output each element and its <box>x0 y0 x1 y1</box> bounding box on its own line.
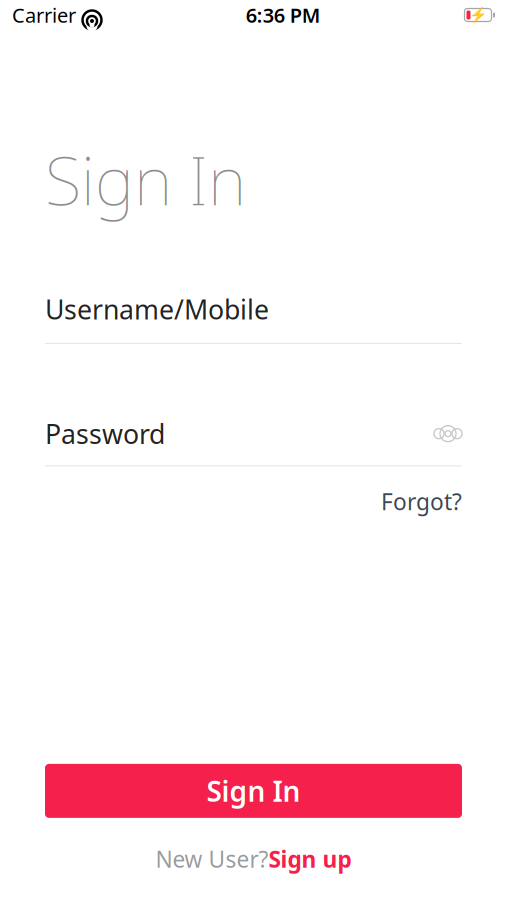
button[interactable]: Sign In <box>45 764 462 818</box>
staticText: Sign In <box>206 772 300 809</box>
staticText: Password <box>45 416 165 451</box>
staticText: Username/Mobile <box>45 291 269 327</box>
staticText: ⚡ <box>469 7 487 23</box>
button[interactable]: Sign up <box>268 844 351 874</box>
staticText: New User? <box>155 844 268 874</box>
staticText: 6:36 PM <box>246 2 321 28</box>
staticText: Sign up <box>268 844 351 874</box>
button[interactable]: Show password <box>434 423 462 445</box>
staticText: Carrier <box>12 2 76 28</box>
button[interactable]: Forgot? <box>381 486 462 516</box>
staticText: Forgot? <box>381 486 462 516</box>
staticText: Sign In <box>45 135 246 223</box>
